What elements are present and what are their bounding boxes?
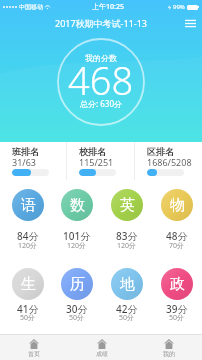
staticText: 101分 — [63, 229, 91, 243]
staticText: 我的 — [163, 350, 175, 358]
staticText: 区排名 — [147, 146, 174, 157]
staticText: 1686/5208 — [147, 156, 192, 168]
staticText: 成绩 — [96, 350, 108, 358]
button[interactable]: 我的 — [135, 335, 202, 360]
button[interactable]: 地 — [102, 268, 152, 328]
button[interactable]: 校排名 — [67, 142, 134, 180]
staticText: 120分 — [67, 241, 87, 251]
staticText: 上午10:25 — [92, 2, 124, 12]
staticText: 总分: 630分 — [80, 98, 122, 109]
staticText: 83分 — [116, 229, 138, 243]
button[interactable]: 首页 — [0, 335, 68, 360]
button[interactable]: 成绩 — [68, 335, 135, 360]
staticText: 生 — [21, 275, 36, 294]
button[interactable]: 历 — [52, 268, 102, 328]
button[interactable]: 英 — [102, 189, 152, 249]
staticText: 41分 — [17, 302, 39, 316]
staticText: 50分 — [69, 313, 85, 323]
staticText: 48分 — [166, 229, 188, 243]
staticText: 首页 — [28, 350, 40, 358]
staticText: 42分 — [116, 302, 138, 316]
button[interactable]: 语 — [3, 189, 52, 249]
button[interactable]: 班排名 — [0, 142, 66, 180]
staticText: 中国移动 — [19, 3, 43, 11]
staticText: 2017秋期中考试-11-13 — [55, 17, 147, 29]
staticText: 120分 — [18, 241, 38, 251]
staticText: 468 — [68, 54, 134, 106]
staticText: 50分 — [169, 313, 185, 323]
staticText: 政 — [170, 275, 185, 294]
staticText: 数 — [70, 196, 85, 215]
staticText: 50分 — [119, 313, 135, 323]
staticText: 70分 — [169, 241, 185, 251]
button[interactable]: Menu — [182, 15, 198, 31]
staticText: 50分 — [20, 313, 36, 323]
staticText: 我的分数 — [85, 53, 117, 63]
staticText: 31/63 — [12, 156, 36, 168]
button[interactable]: 政 — [152, 268, 202, 328]
staticText: 120分 — [117, 241, 137, 251]
staticText: 班排名 — [12, 146, 39, 157]
staticText: 英 — [120, 196, 135, 215]
staticText: 39分 — [166, 302, 188, 316]
staticText: 校排名 — [79, 146, 106, 157]
staticText: 99% — [173, 3, 185, 11]
staticText: 115/251 — [79, 156, 114, 168]
staticText: 30分 — [66, 302, 88, 316]
button[interactable]: 生 — [3, 268, 52, 328]
button[interactable]: 区排名 — [135, 142, 202, 180]
staticText: 84分 — [17, 229, 39, 243]
staticText: 历 — [70, 275, 85, 294]
staticText: 语 — [21, 196, 36, 215]
staticText: 地 — [120, 275, 135, 294]
staticText: 物 — [170, 196, 185, 215]
button[interactable]: 物 — [152, 189, 202, 249]
button[interactable]: 数 — [52, 189, 102, 249]
